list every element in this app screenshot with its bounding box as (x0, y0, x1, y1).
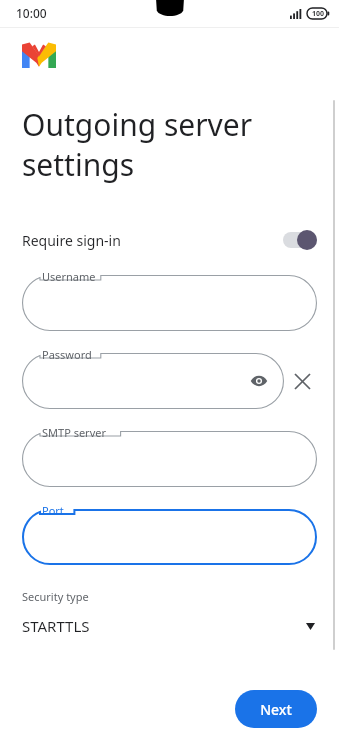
button[interactable]: Port (22, 509, 317, 565)
staticText: STARTTLS (22, 616, 90, 636)
button[interactable]: Next (235, 690, 317, 728)
staticText: Next (260, 700, 292, 719)
staticText: 100 (312, 9, 325, 19)
button[interactable]: Clear password (287, 366, 317, 396)
staticText: Require sign-in (22, 231, 121, 250)
staticText: Security type (22, 589, 89, 604)
button[interactable]: Password (22, 353, 284, 409)
staticText: Password (42, 347, 92, 362)
button[interactable]: SMTP server (22, 431, 317, 487)
button[interactable]: Username (22, 275, 317, 331)
button[interactable]: Require sign-in (22, 223, 317, 257)
staticText: 10:00 (16, 5, 47, 21)
staticText: SMTP server (42, 425, 106, 440)
staticText: Username (42, 269, 96, 284)
staticText: Port (42, 503, 64, 518)
button[interactable]: Show password (248, 370, 270, 392)
button[interactable]: Security type (22, 589, 317, 636)
staticText: Outgoing server settings (22, 104, 253, 185)
